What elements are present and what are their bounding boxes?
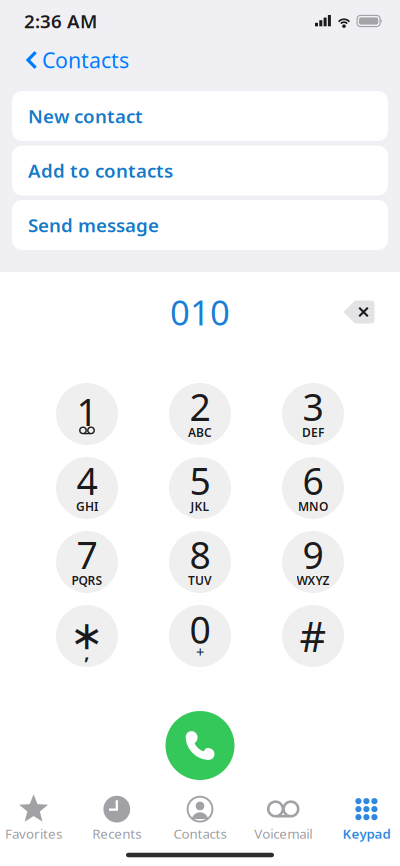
staticText: 6 [302, 456, 323, 505]
staticText: 7 [76, 530, 97, 579]
button[interactable]: 6 [282, 457, 344, 519]
staticText: GHI [76, 498, 98, 514]
button[interactable]: Contacts [158, 794, 242, 844]
staticText: MNO [298, 498, 328, 514]
staticText: Contacts [173, 825, 226, 842]
staticText: 010 [170, 289, 230, 335]
button[interactable]: Add to contacts [12, 145, 388, 195]
button[interactable]: 1 [56, 383, 118, 445]
staticText: 9 [302, 530, 323, 579]
staticText: 2:36 AM [24, 9, 97, 33]
button[interactable]: Contacts [0, 42, 400, 78]
button[interactable]: 9 [282, 531, 344, 593]
staticText: ∗ [70, 613, 104, 658]
staticText: , [84, 638, 90, 665]
staticText: 1 [76, 387, 97, 436]
button[interactable]: Call [165, 711, 234, 780]
staticText: New contact [28, 104, 143, 128]
button[interactable]: Favorites [0, 794, 75, 844]
staticText: Favorites [5, 825, 62, 842]
button[interactable]: 4 [56, 457, 118, 519]
staticText: PQRS [71, 572, 102, 588]
staticText: TUV [188, 572, 212, 588]
staticText: 2 [189, 382, 210, 431]
button[interactable]: New contact [12, 91, 388, 141]
button[interactable]: 7 [56, 531, 118, 593]
staticText: Contacts [42, 46, 129, 74]
staticText: Keypad [342, 825, 390, 842]
staticText: 4 [76, 456, 97, 505]
staticText: Voicemail [254, 825, 312, 842]
button[interactable]: Delete [334, 295, 384, 329]
staticText: ABC [188, 424, 212, 440]
staticText: JKL [190, 498, 209, 514]
button[interactable]: # [282, 605, 344, 667]
button[interactable]: 5 [169, 457, 231, 519]
button[interactable]: 8 [169, 531, 231, 593]
button[interactable]: 2 [169, 383, 231, 445]
staticText: + [196, 642, 204, 661]
button[interactable]: Recents [75, 794, 158, 844]
button[interactable]: 3 [282, 383, 344, 445]
staticText: 8 [189, 530, 210, 579]
staticText: 0 [189, 604, 210, 654]
staticText: # [299, 609, 326, 663]
staticText: Recents [92, 825, 141, 842]
button[interactable]: Send message [12, 200, 388, 250]
button[interactable]: Keypad [325, 794, 400, 844]
staticText: Add to contacts [28, 158, 173, 183]
button[interactable]: Voicemail [242, 794, 325, 844]
staticText: 3 [302, 382, 323, 431]
button[interactable]: ∗ [56, 605, 118, 667]
staticText: DEF [302, 424, 324, 440]
staticText: Send message [28, 213, 159, 237]
button[interactable]: 0 [169, 605, 231, 667]
staticText: 5 [189, 456, 210, 505]
staticText: WXYZ [296, 572, 329, 588]
